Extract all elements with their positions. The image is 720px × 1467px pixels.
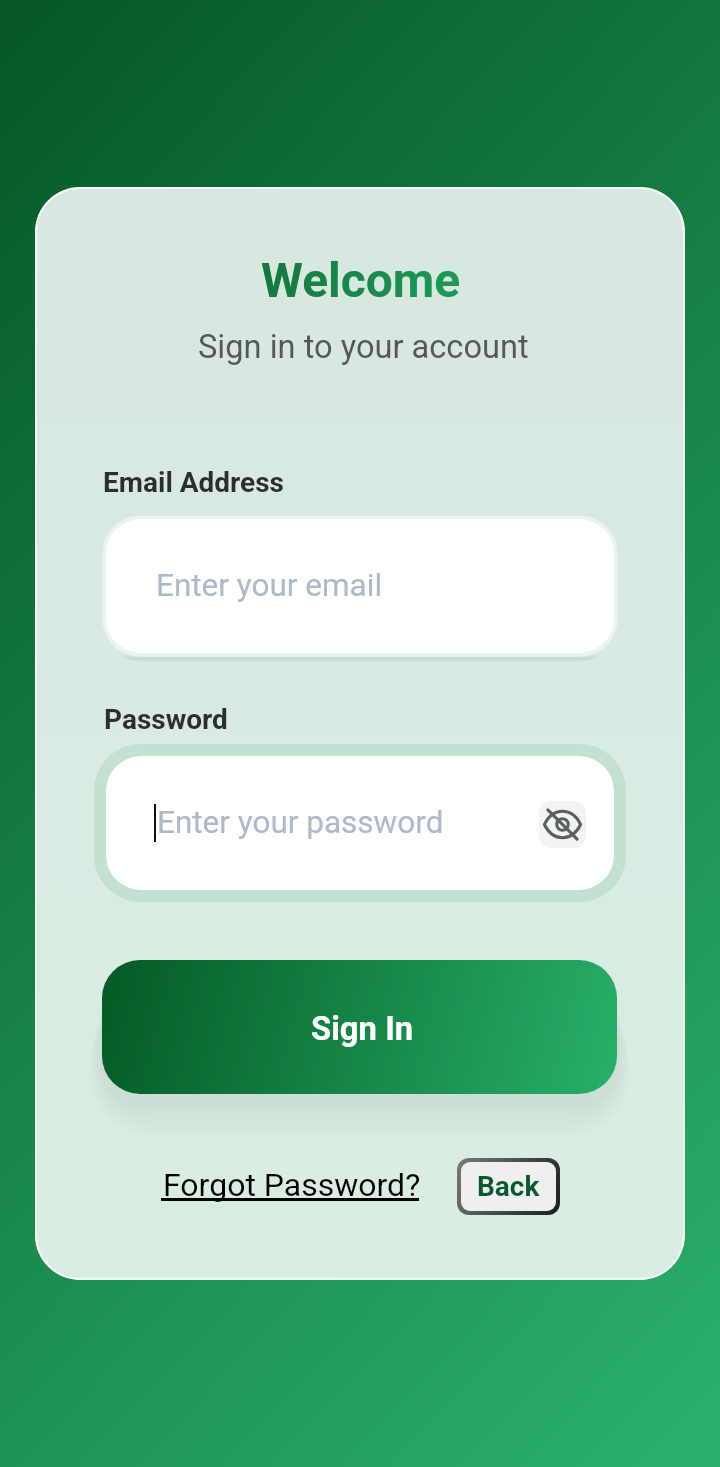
staticText: Welcome [261,253,461,309]
staticText: Forgot Password? [163,1166,421,1204]
staticText: Sign in to your account [198,328,529,366]
button[interactable]: Sign In [102,960,617,1094]
staticText: Password [104,703,228,736]
staticText: Sign In [311,1010,414,1048]
button[interactable]: Show password [539,801,586,848]
staticText: Email Address [103,466,284,499]
button[interactable]: Enter your email [106,519,614,653]
button[interactable]: Enter your password [106,756,614,890]
button[interactable]: Back [461,1162,556,1211]
staticText: Enter your password [157,804,444,841]
staticText: Enter your email [156,567,383,604]
button[interactable]: Forgot Password? [158,1163,422,1209]
staticText: Back [477,1170,540,1203]
